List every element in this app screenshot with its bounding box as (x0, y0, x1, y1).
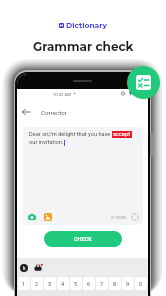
button[interactable]: Camera (28, 213, 36, 221)
staticText: 8 (113, 281, 117, 287)
button[interactable]: 2 (31, 277, 43, 290)
staticText: 2 (35, 281, 39, 287)
staticText: 0/10000 (111, 215, 127, 220)
button[interactable]: 9 (122, 277, 134, 290)
button[interactable]: Clear text (131, 213, 139, 221)
staticText: k (23, 266, 26, 271)
staticText: our invitation. (29, 139, 64, 146)
button[interactable]: 1 (18, 277, 30, 290)
button[interactable]: CHECK (44, 231, 122, 247)
button[interactable]: 3 (44, 277, 56, 290)
staticText: Corrector (41, 109, 67, 116)
staticText: 1 (22, 281, 26, 287)
staticText: Dear sir,I'm delight that you have (29, 131, 112, 138)
staticText: 9 (126, 281, 130, 287)
staticText: CHECK (74, 236, 92, 242)
button[interactable]: 7 (96, 277, 108, 290)
staticText: 7 (100, 281, 104, 287)
staticText: 4 (61, 281, 65, 287)
staticText: 0 (139, 281, 143, 287)
button[interactable]: 6 (83, 277, 95, 290)
button[interactable]: 8 (109, 277, 121, 290)
staticText: Dictionary (66, 21, 107, 30)
button[interactable]: 4 (57, 277, 69, 290)
button[interactable]: Keyboard settings (20, 264, 28, 272)
button[interactable]: Back (21, 107, 31, 117)
button[interactable]: 0 (135, 277, 147, 290)
button[interactable]: Grammar check (127, 66, 160, 99)
staticText: 6 (87, 281, 91, 287)
staticText: accept (113, 131, 131, 138)
button[interactable]: Gallery (44, 213, 52, 221)
staticText: 5 (74, 281, 78, 287)
staticText: 3 (48, 281, 52, 287)
button[interactable]: Store (34, 263, 43, 272)
staticText: Grammar check (33, 39, 134, 54)
staticText: 10:22 AM (53, 92, 71, 97)
button[interactable]: 5 (70, 277, 82, 290)
